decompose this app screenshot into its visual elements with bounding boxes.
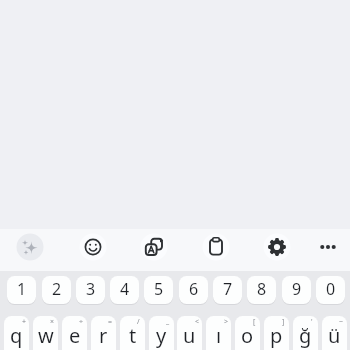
button[interactable]: w [33,316,58,350]
button[interactable]: 3 [76,276,105,304]
button[interactable]: 4 [110,276,139,304]
button[interactable] [260,230,294,270]
button[interactable]: 6 [179,276,208,304]
button[interactable]: ı [206,316,231,350]
staticText: 9 [292,278,302,300]
button[interactable]: 9 [282,276,311,304]
staticText: < [195,317,200,327]
staticText: p [270,322,283,349]
button[interactable] [199,230,233,270]
staticText: 1 [17,278,27,300]
staticText: 4 [120,278,130,300]
button[interactable] [311,230,345,270]
button[interactable]: 1 [7,276,36,304]
button[interactable]: 2 [42,276,71,304]
button[interactable]: u [177,316,202,350]
staticText: 5 [154,278,164,300]
button[interactable] [13,230,47,270]
staticText: = [108,317,113,327]
staticText: 7 [223,278,233,300]
button[interactable]: e [62,316,87,350]
staticText: u [183,322,196,349]
staticText: > [224,317,229,327]
button[interactable]: t [120,316,145,350]
staticText: 0 [326,278,336,300]
staticText: [ [253,317,256,327]
staticText: ÷ [79,317,84,327]
staticText: ] [282,317,285,327]
staticText: 6 [189,278,199,300]
button[interactable] [76,230,110,270]
staticText: ü [328,322,341,349]
button[interactable]: 5 [144,276,173,304]
staticText: 2 [52,278,62,300]
staticText: e [69,322,81,349]
button[interactable]: ü [322,316,347,350]
button[interactable]: p [264,316,289,350]
staticText: + [22,317,27,327]
staticText: ~ [339,317,344,327]
staticText: r [99,322,108,349]
button[interactable]: q [4,316,29,350]
staticText: ğ [299,322,312,349]
staticText: 3 [86,278,96,300]
staticText: 8 [257,278,267,300]
staticText: q [10,322,23,349]
staticText: w [38,322,54,349]
button[interactable]: o [235,316,260,350]
button[interactable] [137,230,171,270]
staticText: y [156,322,167,349]
button[interactable]: ğ [293,316,318,350]
staticText: / [137,317,140,327]
button[interactable]: r [91,316,116,350]
staticText: × [50,317,55,327]
staticText: _ [166,317,170,327]
button[interactable]: 7 [213,276,242,304]
staticText: o [241,322,254,349]
staticText: t [129,322,137,349]
button[interactable]: 0 [316,276,345,304]
button[interactable]: y [149,316,174,350]
staticText: ı [216,322,222,349]
staticText: ' [311,317,313,327]
button[interactable]: 8 [247,276,276,304]
